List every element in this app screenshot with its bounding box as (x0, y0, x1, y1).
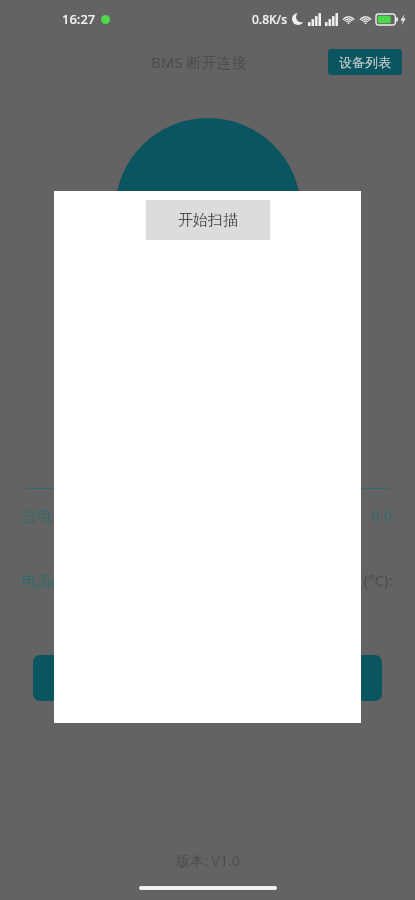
staticText: 16:27 (62, 10, 96, 28)
staticText: 0 温度(°C): (321, 570, 393, 590)
staticText: 0.0 (371, 505, 393, 525)
staticText: 设备列表 (339, 54, 391, 70)
button[interactable]: 设备列表 (328, 49, 402, 75)
staticText: 电流(A): (22, 570, 75, 590)
button[interactable]: 开始扫描 (146, 200, 270, 240)
staticText: BMS 断开连接 (151, 52, 247, 72)
staticText: 开始扫描 (178, 211, 238, 230)
button[interactable] (33, 655, 382, 701)
staticText: 版本: V1.0 (176, 851, 240, 870)
staticText: 0% (182, 191, 235, 243)
staticText: 0.8K/s (252, 11, 288, 27)
staticText: 总电压(V): (22, 505, 90, 525)
